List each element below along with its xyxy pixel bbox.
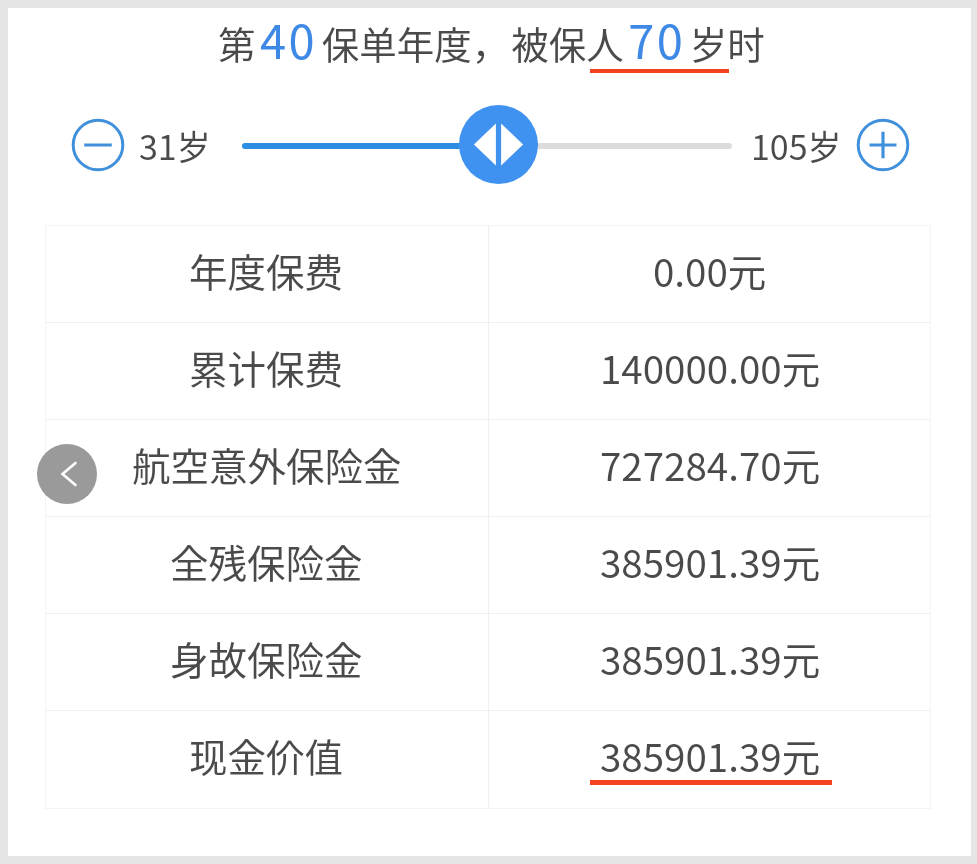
staticText: 727284.70元: [600, 436, 821, 492]
staticText: 现金价值: [189, 727, 344, 783]
button[interactable]: 现金价值: [45, 711, 931, 807]
button[interactable]: Age slider: [459, 105, 538, 184]
button[interactable]: Increase age: [851, 113, 915, 177]
staticText: 年度保费: [189, 242, 344, 298]
staticText: 385901.39元: [600, 533, 821, 589]
button[interactable]: 全残保险金: [45, 517, 931, 613]
staticText: 身故保险金: [170, 630, 363, 686]
button[interactable]: Back: [37, 444, 97, 504]
button[interactable]: Decrease age: [66, 113, 130, 177]
staticText: 0.00元: [653, 242, 767, 298]
button[interactable]: 航空意外保险金: [45, 420, 931, 516]
staticText: 航空意外保险金: [132, 436, 402, 492]
staticText: 累计保费: [189, 339, 344, 395]
staticText: 140000.00元: [600, 339, 821, 395]
staticText: 105岁: [751, 121, 842, 170]
button[interactable]: 年度保费: [45, 225, 931, 322]
staticText: 全残保险金: [170, 533, 363, 589]
staticText: 385901.39元: [600, 630, 821, 686]
staticText: 385901.39元: [600, 727, 821, 783]
button[interactable]: 身故保险金: [45, 614, 931, 710]
button[interactable]: 累计保费: [45, 323, 931, 419]
staticText: 第 40 保单年度， 被保人 70 岁时: [218, 4, 765, 72]
staticText: 31岁: [139, 121, 211, 170]
